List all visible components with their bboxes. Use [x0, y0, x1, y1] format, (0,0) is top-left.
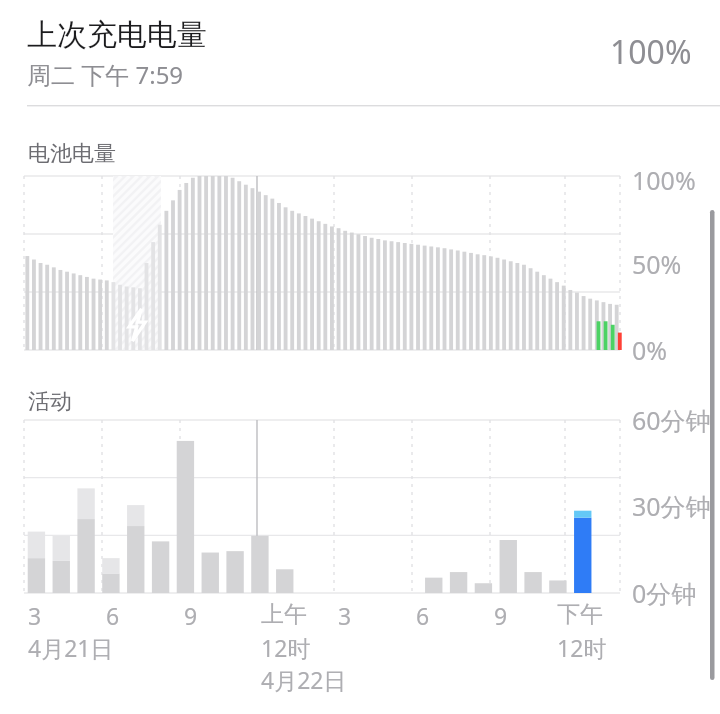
button[interactable]: Battery usage chart — [0, 0, 720, 714]
